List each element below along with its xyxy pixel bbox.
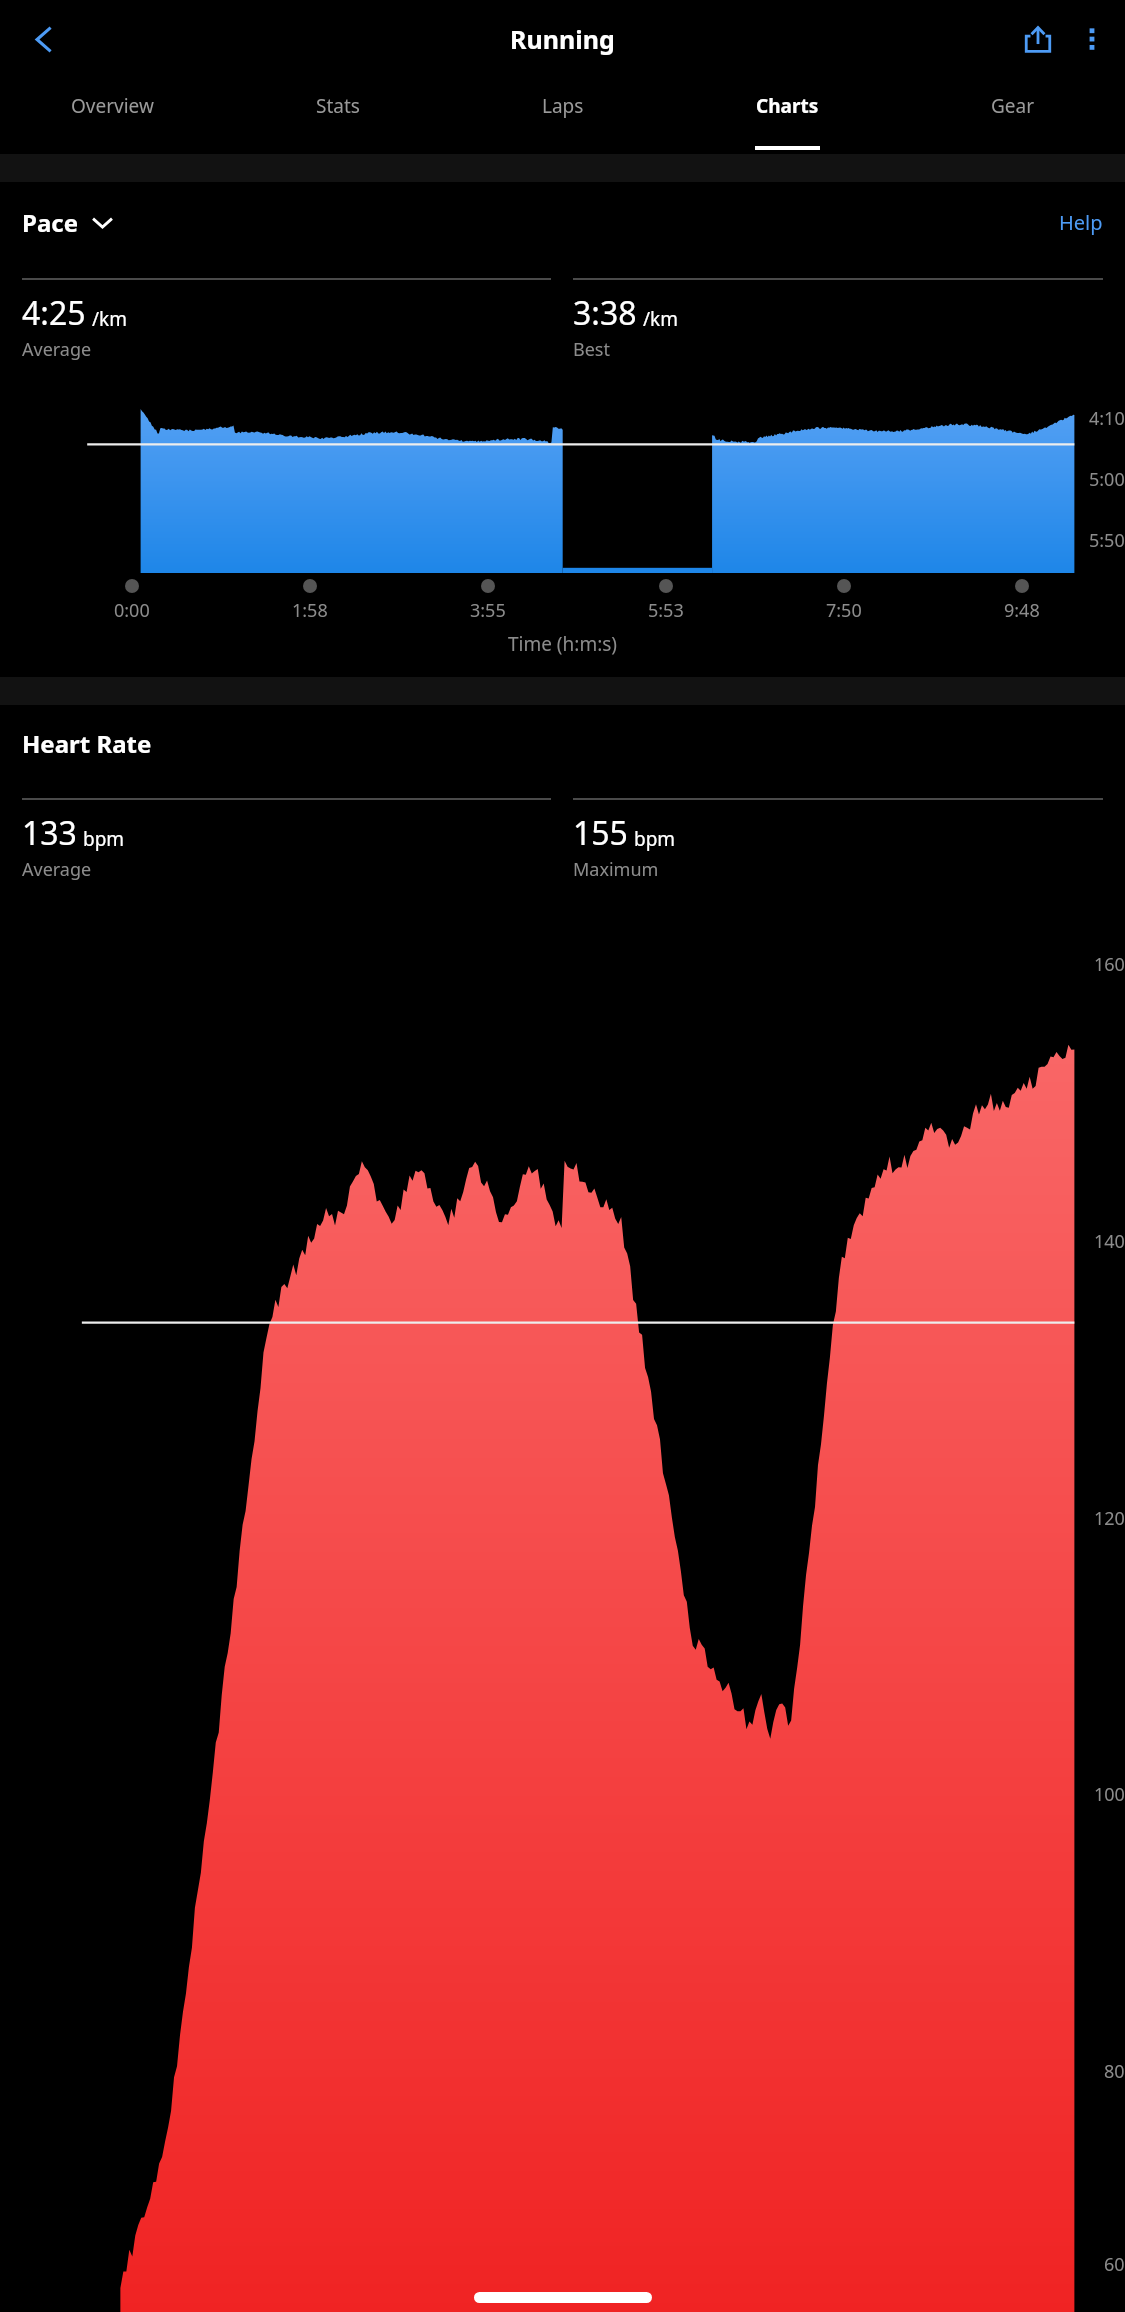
staticText: 3:38	[573, 291, 637, 335]
button[interactable]: Share	[1011, 12, 1065, 66]
staticText: 80	[1104, 2059, 1125, 2084]
staticText: 0:00	[114, 598, 150, 623]
staticText: 5:00	[1089, 467, 1125, 492]
staticText: 4:10	[1089, 406, 1125, 431]
staticText: 160	[1094, 952, 1125, 977]
staticText: 5:53	[648, 598, 684, 623]
staticText: bpm	[634, 826, 676, 852]
button[interactable]: Help	[1059, 209, 1103, 236]
staticText: 3:55	[470, 598, 506, 623]
staticText: Overview	[71, 93, 154, 119]
button[interactable]: Laps	[450, 78, 675, 154]
staticText: 155	[573, 811, 628, 855]
staticText: 5:50	[1089, 528, 1125, 553]
staticText: 60	[1104, 2252, 1125, 2277]
staticText: Average	[22, 857, 92, 882]
staticText: 140	[1094, 1229, 1125, 1254]
staticText: Help	[1059, 209, 1103, 236]
staticText: 4:25	[22, 291, 86, 335]
button[interactable]: More options	[1065, 12, 1119, 66]
button[interactable]: Charts	[675, 78, 900, 154]
button[interactable]: Stats	[225, 78, 450, 154]
staticText: Time (h:m:s)	[0, 631, 1125, 657]
staticText: bpm	[83, 826, 125, 852]
staticText: Average	[22, 337, 92, 362]
staticText: Pace	[22, 206, 78, 239]
staticText: Laps	[542, 93, 584, 119]
staticText: /km	[92, 306, 127, 332]
staticText: 7:50	[826, 598, 862, 623]
staticText: Stats	[316, 93, 360, 119]
staticText: Running	[510, 22, 615, 56]
staticText: 120	[1094, 1506, 1125, 1531]
staticText: 9:48	[1004, 598, 1040, 623]
button[interactable]: Back	[18, 14, 68, 64]
button[interactable]: Pace	[22, 206, 113, 239]
staticText: 1:58	[292, 598, 328, 623]
staticText: Best	[573, 337, 610, 362]
staticText: 100	[1094, 1782, 1125, 1807]
staticText: Heart Rate	[22, 727, 152, 760]
button[interactable]: Gear	[900, 78, 1125, 154]
staticText: /km	[643, 306, 678, 332]
staticText: Maximum	[573, 857, 659, 882]
staticText: Gear	[991, 93, 1035, 119]
staticText: Charts	[756, 93, 819, 119]
staticText: 133	[22, 811, 77, 855]
button[interactable]: Overview	[0, 78, 225, 154]
